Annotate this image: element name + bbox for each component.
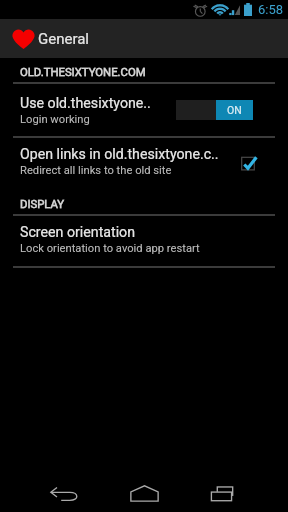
staticText: 6:58 [258, 2, 284, 17]
staticText: DISPLAY [20, 198, 65, 211]
staticText: Open links in old.thesixtyone.c.. [20, 146, 219, 163]
button[interactable]: Use old.thesixtyone.. [0, 84, 288, 136]
button[interactable]: Home [104, 464, 184, 502]
staticText: ON [227, 104, 242, 116]
button[interactable]: General [0, 19, 288, 58]
button[interactable]: Open links in old.thesixtyone.c.. [0, 138, 288, 194]
button[interactable]: Recent apps [184, 464, 264, 502]
staticText: Login working [20, 113, 90, 126]
staticText: General [38, 30, 90, 48]
button[interactable]: Screen orientation [0, 216, 288, 266]
button[interactable]: Toggle setting [176, 100, 253, 120]
staticText: OLD.THESIXTYONE.COM [20, 66, 146, 79]
staticText: Lock orientation to avoid app restart [20, 242, 200, 255]
staticText: Use old.thesixtyone.. [20, 95, 151, 112]
staticText: Screen orientation [20, 224, 136, 241]
button[interactable]: Checkbox [239, 154, 261, 176]
button[interactable]: Back [24, 464, 104, 502]
staticText: Redirect all links to the old site [20, 164, 172, 177]
